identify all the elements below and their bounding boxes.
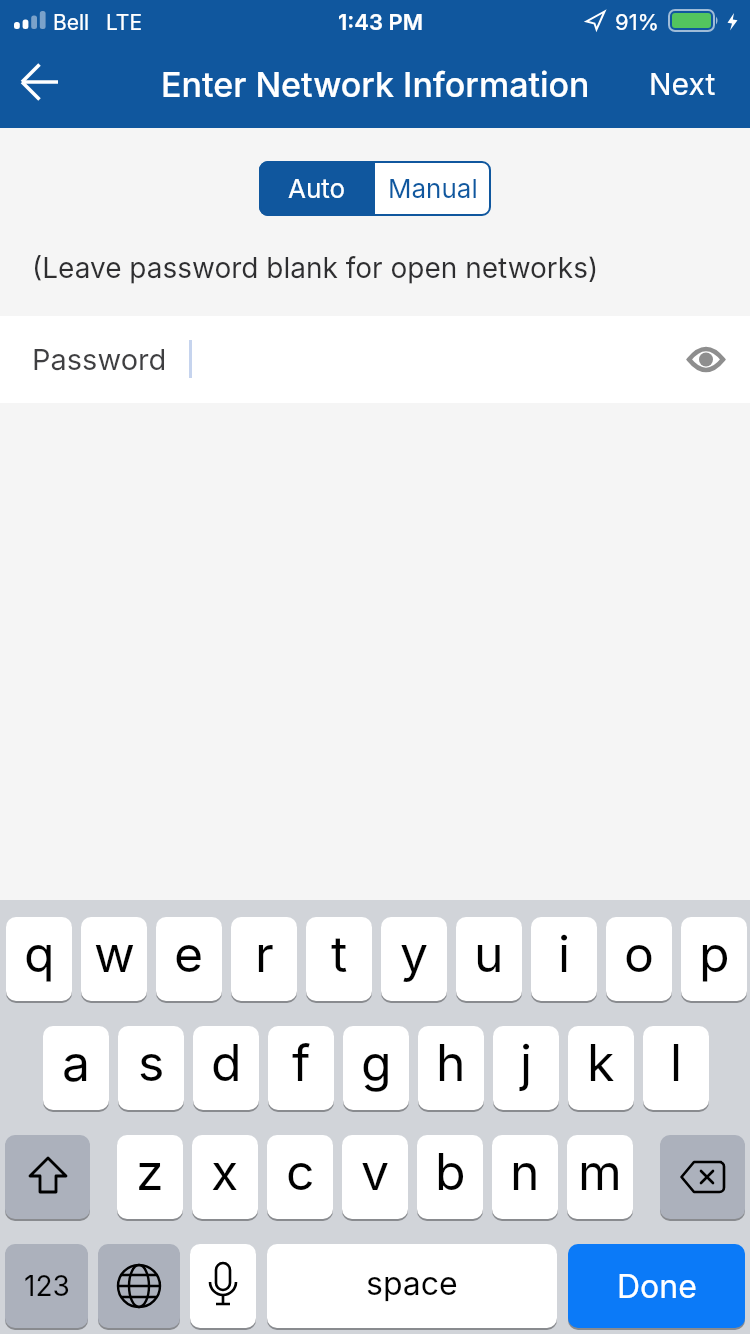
staticText: c (286, 1142, 315, 1202)
button[interactable]: f (268, 1026, 334, 1110)
staticText: t (331, 924, 348, 984)
staticText: Next (649, 66, 716, 102)
button[interactable] (190, 1244, 256, 1328)
staticText: k (587, 1033, 615, 1093)
button[interactable] (98, 1244, 180, 1328)
staticText: j (520, 1033, 533, 1093)
button[interactable]: Auto (259, 161, 375, 216)
button[interactable]: v (342, 1135, 408, 1219)
staticText: v (361, 1142, 390, 1202)
button[interactable] (676, 334, 736, 384)
staticText: s (138, 1033, 165, 1093)
button[interactable]: z (117, 1135, 183, 1219)
button[interactable]: Next (630, 56, 740, 112)
staticText: LTE (106, 10, 143, 35)
button[interactable]: i (531, 917, 597, 1001)
button[interactable]: r (231, 917, 297, 1001)
staticText: 91% (615, 9, 660, 36)
staticText: Done (617, 1267, 697, 1306)
staticText: g (361, 1033, 392, 1093)
staticText: 123 (24, 1269, 70, 1303)
staticText: w (94, 924, 135, 984)
staticText: l (670, 1033, 683, 1093)
button[interactable]: g (343, 1026, 409, 1110)
staticText: Enter Network Information (161, 64, 590, 105)
staticText: p (699, 924, 730, 984)
button[interactable]: b (417, 1135, 483, 1219)
button[interactable]: x (192, 1135, 258, 1219)
staticText: o (624, 924, 654, 984)
staticText: i (558, 924, 571, 984)
staticText: a (62, 1033, 91, 1093)
button[interactable]: y (381, 917, 447, 1001)
button[interactable]: space (267, 1244, 557, 1328)
staticText: Manual (388, 173, 478, 204)
staticText: f (292, 1033, 311, 1093)
button[interactable]: d (193, 1026, 259, 1110)
staticText: u (474, 924, 504, 984)
button[interactable]: u (456, 917, 522, 1001)
staticText: e (174, 924, 204, 984)
staticText: Auto (288, 173, 346, 204)
button[interactable]: a (43, 1026, 109, 1110)
button[interactable]: h (418, 1026, 484, 1110)
staticText: y (400, 924, 429, 984)
button[interactable]: p (681, 917, 747, 1001)
staticText: (Leave password blank for open networks) (32, 251, 599, 285)
button[interactable] (0, 316, 750, 403)
staticText: 1:43 PM (338, 9, 423, 36)
button[interactable]: k (568, 1026, 634, 1110)
staticText: Bell (53, 10, 90, 35)
staticText: h (436, 1033, 466, 1093)
button[interactable]: s (118, 1026, 184, 1110)
button[interactable] (660, 1135, 745, 1219)
button[interactable]: Done (568, 1244, 745, 1328)
button[interactable]: l (643, 1026, 709, 1110)
button[interactable]: q (6, 917, 72, 1001)
button[interactable]: e (156, 917, 222, 1001)
button[interactable]: c (267, 1135, 333, 1219)
button[interactable]: 123 (5, 1244, 88, 1328)
button[interactable]: j (493, 1026, 559, 1110)
button[interactable]: m (567, 1135, 633, 1219)
staticText: m (578, 1142, 622, 1202)
staticText: r (255, 924, 274, 984)
button[interactable] (5, 1135, 90, 1219)
button[interactable]: n (492, 1135, 558, 1219)
button[interactable]: Manual (375, 161, 491, 216)
button[interactable] (8, 52, 72, 112)
staticText: z (136, 1142, 164, 1202)
staticText: space (366, 1264, 458, 1303)
staticText: x (211, 1142, 239, 1202)
button[interactable]: t (306, 917, 372, 1001)
button[interactable]: w (81, 917, 147, 1001)
staticText: n (510, 1142, 540, 1202)
staticText: Password (32, 342, 167, 377)
button[interactable]: o (606, 917, 672, 1001)
staticText: q (24, 924, 55, 984)
staticText: d (211, 1033, 242, 1093)
staticText: b (435, 1142, 466, 1202)
